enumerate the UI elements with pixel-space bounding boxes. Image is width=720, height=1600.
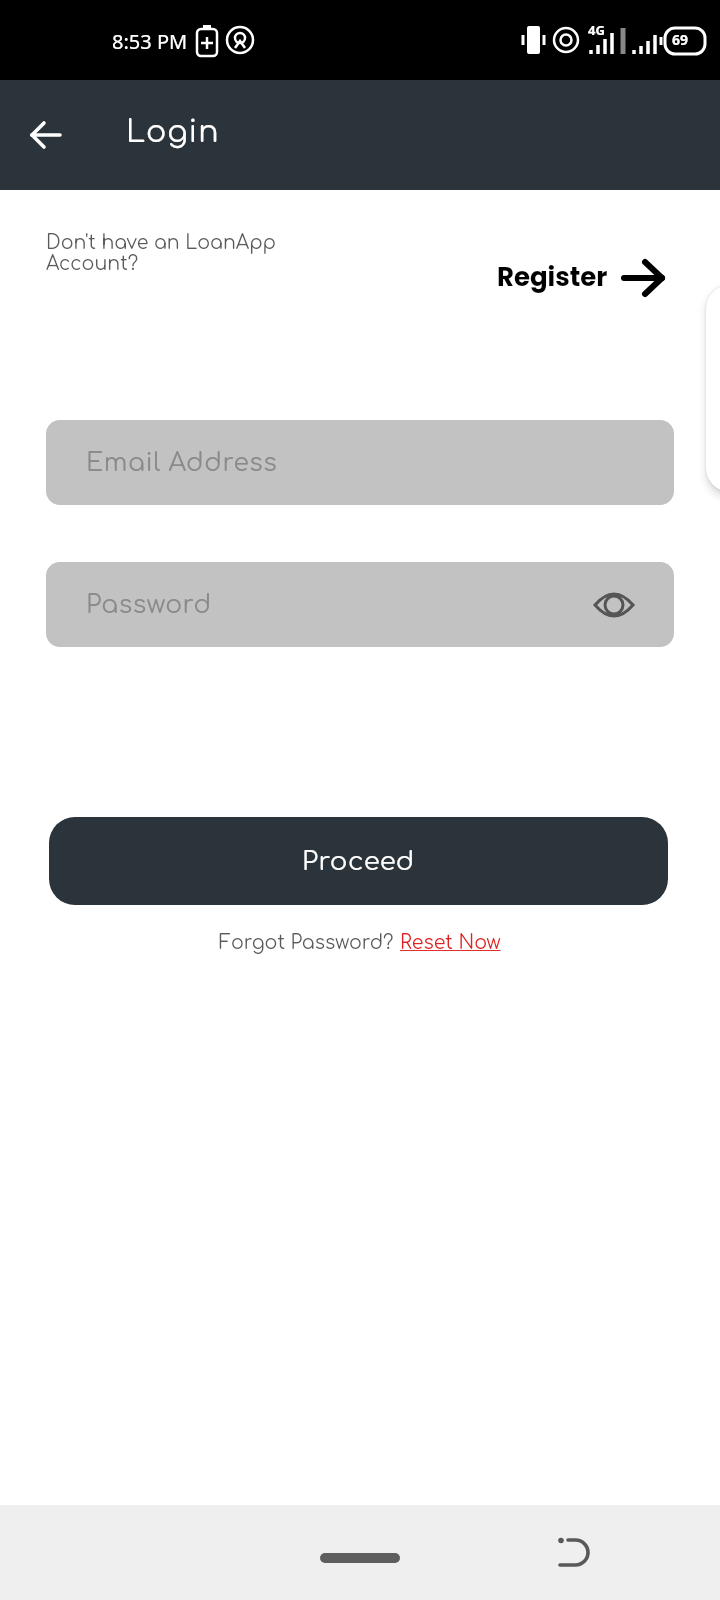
button[interactable]: Register: [482, 242, 682, 312]
staticText: Email Address: [86, 449, 278, 477]
button[interactable]: Proceed: [49, 817, 668, 905]
button[interactable]: Reset Now: [400, 932, 501, 953]
staticText: Register: [497, 259, 608, 295]
staticText: 69: [672, 30, 689, 49]
button[interactable]: [24, 114, 68, 158]
staticText: Forgot Password?: [219, 932, 400, 953]
button[interactable]: Email Address: [46, 420, 674, 505]
staticText: Proceed: [302, 847, 415, 876]
staticText: Don't have an LoanApp Account?: [46, 232, 277, 275]
staticText: 8:53 PM: [112, 28, 188, 55]
staticText: 4G: [588, 21, 605, 39]
staticText: Login: [126, 116, 220, 149]
staticText: Password: [86, 591, 212, 619]
button[interactable]: Password: [46, 562, 674, 647]
button[interactable]: [320, 1553, 400, 1563]
